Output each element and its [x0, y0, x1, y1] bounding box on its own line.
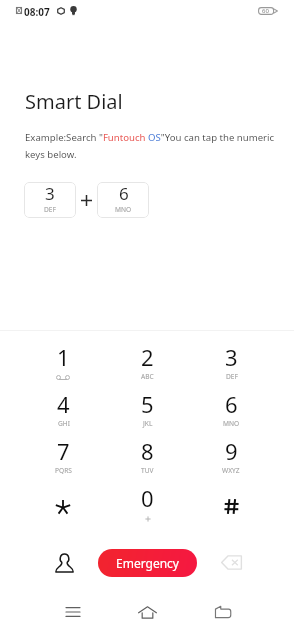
button[interactable]: 6	[189, 389, 273, 436]
staticText: 2	[141, 342, 154, 372]
staticText: MNO	[115, 205, 132, 214]
button[interactable]: 9	[189, 436, 273, 483]
staticText: TUV	[141, 466, 154, 475]
staticText: 6	[119, 182, 129, 205]
staticText: 3	[225, 342, 238, 372]
staticText: Smart Dial	[25, 88, 123, 115]
button[interactable]: 1	[21, 342, 105, 389]
staticText: MNO	[223, 419, 240, 428]
button[interactable]: Recents	[53, 599, 93, 625]
staticText: 4	[57, 389, 70, 419]
button[interactable]: Contacts	[43, 548, 85, 577]
button[interactable]: 6	[97, 182, 149, 218]
staticText: Example:Search "Funtouch OS"You can tap …	[25, 131, 275, 160]
button[interactable]	[21, 483, 105, 530]
staticText: PQRS	[55, 466, 72, 475]
button[interactable]: 3	[24, 182, 76, 218]
button[interactable]: 4	[21, 389, 105, 436]
button[interactable]: 2	[105, 342, 189, 389]
button[interactable]	[189, 483, 273, 530]
staticText: 6	[225, 389, 238, 419]
button[interactable]: 5	[105, 389, 189, 436]
button[interactable]: 3	[189, 342, 273, 389]
staticText: DEF	[226, 372, 238, 381]
button[interactable]: Emergency	[98, 549, 197, 577]
staticText: 8	[141, 436, 154, 466]
staticText: 3	[45, 182, 55, 205]
staticText: 9	[225, 436, 238, 466]
staticText: 1	[57, 342, 70, 372]
button[interactable]: 8	[105, 436, 189, 483]
staticText: WXYZ	[222, 466, 240, 475]
staticText: 7	[57, 436, 70, 466]
button[interactable]: Backspace	[210, 548, 252, 577]
staticText: 60	[262, 7, 269, 15]
staticText: 08:07	[24, 5, 50, 19]
button[interactable]: 7	[21, 436, 105, 483]
staticText: DEF	[44, 205, 56, 214]
button[interactable]: 0	[105, 483, 189, 530]
staticText: ABC	[141, 372, 154, 381]
button[interactable]: Back	[203, 599, 243, 625]
button[interactable]: Home	[127, 599, 167, 625]
staticText: GHI	[58, 419, 70, 428]
staticText: 0	[141, 483, 154, 513]
staticText: JKL	[143, 419, 153, 428]
staticText: Emergency	[116, 555, 179, 571]
staticText: 5	[141, 389, 154, 419]
